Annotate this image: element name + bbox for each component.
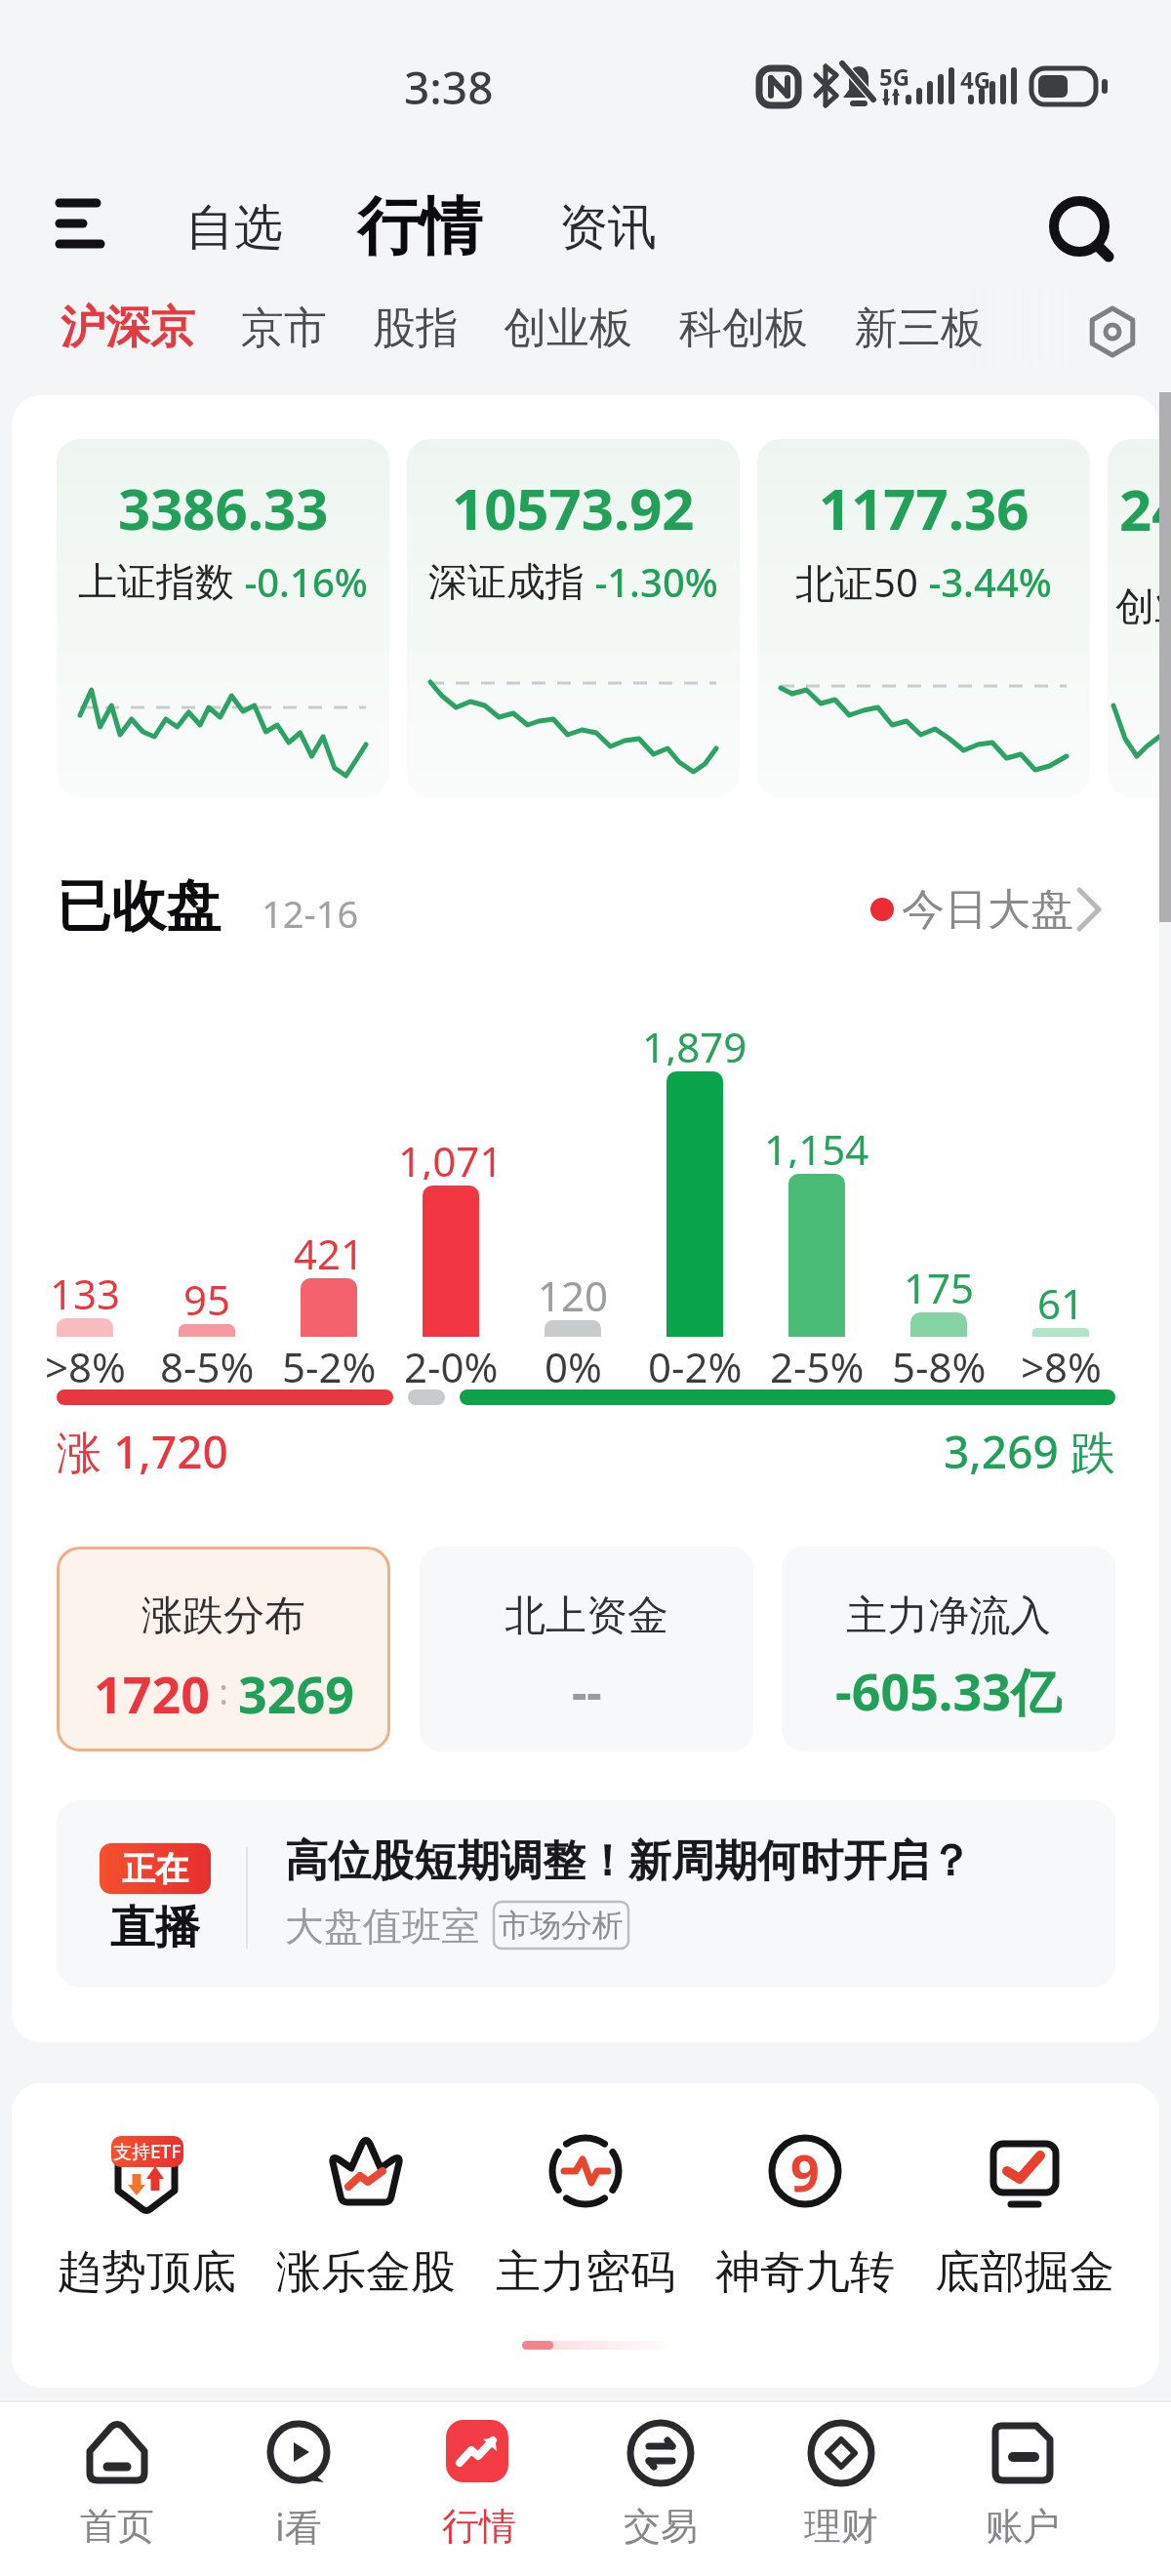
staticText: 创业板 [504, 302, 632, 355]
button[interactable]: 趋势顶底 [49, 2113, 244, 2308]
staticText: 北上资金 [505, 1590, 668, 1641]
staticText: 支持ETF [113, 2139, 182, 2164]
staticText: >8% [45, 1339, 126, 1384]
staticText: 自选 [185, 197, 283, 259]
staticText: 0-2% [648, 1339, 743, 1384]
staticText: 高位股短期调整！新周期何时开启？ [285, 1834, 972, 1888]
button[interactable]: 3386.33 [57, 439, 389, 797]
staticText: 5G [879, 60, 910, 88]
staticText: 1720 [94, 1659, 210, 1723]
button[interactable]: 主力密码 [488, 2113, 683, 2308]
staticText: 今日大盘 [902, 883, 1073, 937]
button[interactable] [47, 187, 115, 262]
button[interactable]: 京市 [237, 300, 330, 356]
staticText: 趋势顶底 [57, 2244, 236, 2299]
staticText: 大盘值班室 [285, 1902, 480, 1951]
button[interactable]: i看 [216, 2408, 382, 2572]
button[interactable]: 今日大盘 [859, 878, 1103, 941]
staticText: 涨跌分布 [141, 1590, 305, 1641]
staticText: 133 [50, 1266, 121, 1312]
button[interactable]: 涨乐金股 [268, 2113, 464, 2308]
staticText: 5-2% [282, 1339, 377, 1384]
button[interactable]: 行情 [396, 2408, 562, 2572]
staticText: 涨乐金股 [276, 2244, 456, 2299]
button[interactable]: 涨跌分布 [57, 1547, 390, 1751]
staticText: -3.44% [918, 555, 1052, 608]
button[interactable]: 自选 [171, 193, 298, 262]
staticText: >8% [1021, 1339, 1102, 1384]
staticText: 市场分析 [499, 1906, 624, 1945]
staticText: 京市 [241, 302, 327, 355]
staticText: 0% [545, 1339, 602, 1384]
button[interactable]: 10573.92 [407, 439, 740, 797]
staticText: -- [572, 1660, 602, 1723]
staticText: 175 [904, 1260, 975, 1307]
button[interactable]: 科创板 [675, 300, 812, 356]
button[interactable]: 资讯 [545, 193, 671, 262]
button[interactable]: 北上资金 [420, 1547, 753, 1751]
staticText: 行情 [442, 2503, 516, 2550]
staticText: 1177.36 [819, 469, 1030, 546]
staticText: 120 [538, 1268, 609, 1314]
staticText: 61 [1037, 1275, 1085, 1322]
button[interactable]: 正在 [57, 1800, 1115, 1988]
staticText: 交易 [624, 2503, 698, 2550]
button[interactable]: 创业板 [500, 300, 636, 356]
staticText: 上证指数 [78, 557, 234, 606]
button[interactable]: 行情 [337, 185, 503, 267]
staticText: 沪深京 [61, 300, 195, 356]
button[interactable]: 1177.36 [757, 439, 1090, 797]
staticText: 神奇九转 [715, 2244, 895, 2299]
button[interactable] [1040, 187, 1122, 269]
staticText: 理财 [804, 2503, 878, 2550]
staticText: 正在 [122, 1848, 188, 1890]
button[interactable]: 主力净流入 [782, 1547, 1115, 1751]
staticText: 2-5% [770, 1339, 865, 1384]
button[interactable]: 9 [707, 2113, 903, 2308]
staticText: 已收盘 [57, 872, 221, 942]
button[interactable]: 交易 [578, 2408, 744, 2572]
staticText: 涨 1,720 [57, 1421, 228, 1475]
staticText: 4G [960, 63, 991, 91]
button[interactable] [1073, 293, 1151, 371]
staticText: 首页 [80, 2503, 154, 2550]
staticText: 底部掘金 [935, 2244, 1114, 2299]
staticText: 421 [294, 1226, 365, 1272]
staticText: i看 [275, 2501, 322, 2552]
staticText: -1.30% [585, 555, 718, 608]
staticText: -605.33亿 [835, 1656, 1062, 1720]
staticText: 2-0% [404, 1339, 499, 1384]
staticText: 95 [183, 1271, 231, 1318]
staticText: 3386.33 [118, 469, 329, 546]
button[interactable]: 底部掘金 [927, 2113, 1122, 2308]
button[interactable]: 沪深京 [57, 298, 198, 358]
staticText: 创业 [1115, 582, 1159, 630]
staticText: 3:38 [404, 57, 494, 111]
staticText: 8-5% [160, 1339, 255, 1384]
staticText: 行情 [357, 187, 482, 266]
staticText: 账户 [986, 2503, 1060, 2550]
staticText: 股指 [373, 302, 459, 355]
staticText: : [210, 1668, 238, 1715]
staticText: 主力净流入 [846, 1590, 1051, 1641]
staticText: 北证50 [795, 555, 918, 609]
staticText: 新三板 [855, 302, 984, 355]
staticText: 科创板 [679, 302, 808, 355]
staticText: 直播 [110, 1900, 200, 1954]
staticText: 10573.92 [452, 469, 695, 546]
staticText: 1,154 [764, 1121, 869, 1168]
staticText: 9 [790, 2137, 820, 2206]
staticText: 3,269 跌 [944, 1421, 1115, 1475]
staticText: -0.16% [234, 555, 368, 608]
button[interactable]: 账户 [940, 2408, 1106, 2572]
button[interactable]: 理财 [758, 2408, 924, 2572]
staticText: 资讯 [559, 197, 657, 259]
staticText: 主力密码 [496, 2244, 675, 2299]
staticText: 1,879 [642, 1019, 747, 1066]
button[interactable]: 股指 [369, 300, 462, 356]
button[interactable]: 新三板 [851, 300, 988, 356]
button[interactable]: 首页 [34, 2408, 200, 2572]
staticText: 深证成指 [428, 557, 585, 606]
staticText: 12-16 [262, 888, 359, 939]
staticText: 5-8% [892, 1339, 987, 1384]
